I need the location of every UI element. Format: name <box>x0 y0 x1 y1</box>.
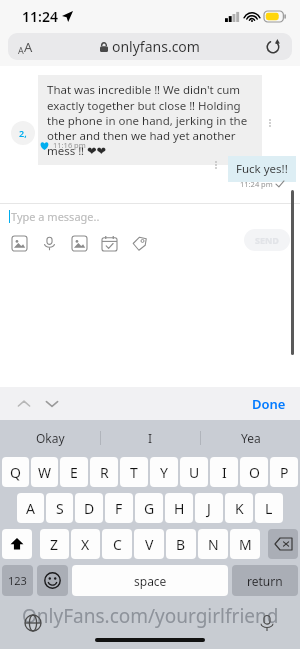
staticText: onlyfans.com <box>112 37 200 56</box>
button[interactable]: Backspace <box>268 529 298 559</box>
button[interactable]: G <box>135 493 163 523</box>
staticText: T <box>130 463 138 482</box>
staticText: E <box>70 463 78 482</box>
staticText: X <box>81 535 90 554</box>
button[interactable]: Next field <box>42 394 62 414</box>
button[interactable]: L <box>255 493 283 523</box>
staticText: Z <box>50 535 59 554</box>
staticText: J <box>207 499 211 518</box>
button[interactable]: space <box>72 565 228 596</box>
button[interactable]: Fuck yes!! <box>228 156 296 182</box>
button[interactable]: H <box>165 493 193 523</box>
button[interactable]: M <box>230 529 260 559</box>
button[interactable]: V <box>134 529 164 559</box>
staticText: 2, <box>19 127 27 139</box>
button[interactable]: S <box>46 493 73 523</box>
button[interactable]: A <box>17 493 44 523</box>
staticText: 11:24 <box>22 7 58 26</box>
staticText: Q <box>10 463 21 482</box>
staticText: M <box>239 535 252 554</box>
button[interactable]: return <box>232 565 298 596</box>
staticText: S <box>56 499 64 518</box>
button[interactable]: Y <box>150 457 178 487</box>
button[interactable]: Dictation <box>258 614 276 632</box>
staticText: N <box>208 535 219 554</box>
button[interactable]: Previous field <box>14 394 34 414</box>
button[interactable]: Z <box>40 529 69 559</box>
button[interactable]: Media library <box>72 236 87 251</box>
button[interactable]: That was incredible ‼️ We didn't cum exa… <box>38 75 262 165</box>
button[interactable]: R <box>90 457 118 487</box>
staticText: OnlyFans.com/yourgirlfriend <box>22 603 279 629</box>
button[interactable]: K <box>225 493 253 523</box>
button[interactable]: Text size options <box>8 33 292 60</box>
button[interactable]: Yea <box>201 420 300 455</box>
staticText: A <box>26 499 35 518</box>
staticText: K <box>235 499 244 518</box>
button[interactable]: P <box>270 457 298 487</box>
staticText: SEND <box>255 234 279 246</box>
staticText: H <box>174 499 185 518</box>
staticText: Type a message.. <box>11 209 100 224</box>
staticText: 11:16 pm <box>53 140 86 150</box>
button[interactable]: Schedule message <box>102 236 117 251</box>
button[interactable]: E <box>60 457 88 487</box>
staticText: space <box>134 573 167 589</box>
staticText: Done <box>252 395 286 413</box>
button[interactable]: Record audio <box>42 236 57 251</box>
button[interactable]: X <box>71 529 100 559</box>
button[interactable]: 2, <box>11 121 35 145</box>
staticText: U <box>189 463 200 482</box>
button[interactable]: Okay <box>0 420 100 455</box>
staticText: O <box>249 463 260 482</box>
button[interactable]: Change keyboard <box>24 614 42 632</box>
button[interactable]: C <box>102 529 132 559</box>
staticText: L <box>265 499 273 518</box>
staticText: F <box>115 499 123 518</box>
button[interactable]: U <box>180 457 208 487</box>
staticText: W <box>38 463 52 482</box>
staticText: A <box>18 44 24 56</box>
staticText: 123 <box>8 573 27 588</box>
button[interactable]: SEND <box>244 229 290 251</box>
button[interactable]: I <box>101 420 200 455</box>
staticText: Y <box>160 463 168 482</box>
button[interactable]: Q <box>2 457 29 487</box>
button[interactable]: Price tag <box>132 236 147 251</box>
button[interactable]: 123 <box>2 565 33 596</box>
button[interactable]: Add photo <box>12 236 27 251</box>
button[interactable]: T <box>120 457 148 487</box>
button[interactable]: Emoji <box>37 565 68 596</box>
staticText: P <box>280 463 289 482</box>
button[interactable]: D <box>75 493 103 523</box>
staticText: Okay <box>36 430 65 446</box>
button[interactable]: Message options <box>210 159 222 171</box>
staticText: B <box>176 535 186 554</box>
button[interactable]: J <box>195 493 223 523</box>
staticText: Yea <box>241 430 261 446</box>
staticText: A <box>24 38 33 56</box>
staticText: return <box>247 573 283 589</box>
button[interactable]: Message options <box>264 117 276 129</box>
button[interactable]: Done <box>252 395 286 413</box>
staticText: 11:24 pm <box>240 179 273 189</box>
button[interactable]: B <box>166 529 196 559</box>
staticText: G <box>144 499 155 518</box>
staticText: I <box>148 430 153 446</box>
button[interactable]: Type a message.. <box>11 209 221 225</box>
staticText: R <box>100 463 109 482</box>
button[interactable]: Shift <box>2 529 32 559</box>
staticText: V <box>145 535 154 554</box>
button[interactable]: Text size options <box>18 38 33 56</box>
button[interactable]: I <box>210 457 238 487</box>
button[interactable]: Reload page <box>264 38 282 56</box>
staticText: D <box>84 499 95 518</box>
button[interactable]: O <box>240 457 268 487</box>
staticText: Fuck yes!! <box>236 161 288 177</box>
staticText: That was incredible ‼️ We didn't cum exa… <box>47 82 253 158</box>
button[interactable]: N <box>198 529 228 559</box>
staticText: I <box>222 463 227 482</box>
button[interactable]: F <box>105 493 133 523</box>
button[interactable]: W <box>31 457 58 487</box>
staticText: C <box>113 535 122 554</box>
